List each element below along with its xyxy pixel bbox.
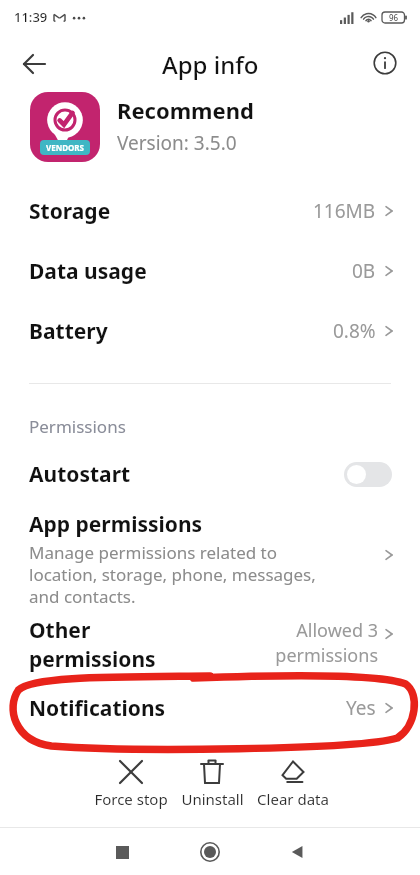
staticText: Other	[29, 616, 91, 645]
staticText: Data usage	[29, 257, 147, 286]
button[interactable]: Battery	[0, 308, 420, 354]
staticText: 0.8%	[333, 318, 376, 344]
staticText: App permissions	[29, 510, 203, 539]
staticText: 96	[389, 12, 399, 23]
button[interactable]: Data usage	[0, 248, 420, 294]
button[interactable]: Autostart	[0, 450, 420, 498]
button[interactable]: Uninstall	[172, 757, 252, 809]
staticText: permissions	[29, 645, 156, 674]
staticText: Version: 3.5.0	[117, 130, 237, 156]
button[interactable]: Clear data	[253, 757, 333, 809]
button[interactable]: Notifications	[0, 685, 420, 731]
staticText: permissions	[240, 643, 378, 668]
staticText: Storage	[29, 197, 111, 226]
staticText: Clear data	[257, 789, 329, 809]
button[interactable]: Back	[279, 829, 315, 875]
staticText: Allowed 3	[240, 618, 378, 643]
staticText: Notifications	[29, 694, 166, 723]
staticText: Manage permissions related to location, …	[29, 541, 329, 608]
staticText: Uninstall	[181, 789, 244, 809]
button[interactable]: App permissions	[0, 505, 420, 610]
button[interactable]: App details	[366, 44, 404, 82]
button[interactable]: Back	[14, 44, 54, 84]
button[interactable]: Storage	[0, 188, 420, 234]
staticText: VENDORS	[46, 142, 85, 153]
staticText: Yes	[346, 695, 376, 721]
staticText: Permissions	[29, 415, 126, 438]
staticText: 116MB	[313, 198, 376, 224]
button[interactable]: Force stop	[91, 757, 171, 809]
other: Autostart toggle, off	[344, 462, 392, 487]
staticText: 11:39	[14, 8, 48, 26]
staticText: Battery	[29, 317, 108, 346]
staticText: Autostart	[29, 460, 131, 489]
button[interactable]: Recents	[104, 829, 140, 875]
staticText: App info	[162, 48, 259, 81]
staticText: Recommend	[117, 95, 254, 125]
button[interactable]: Home	[190, 832, 230, 872]
staticText: Force stop	[94, 789, 168, 809]
button[interactable]: Other	[0, 612, 420, 674]
staticText: 0B	[352, 258, 376, 284]
